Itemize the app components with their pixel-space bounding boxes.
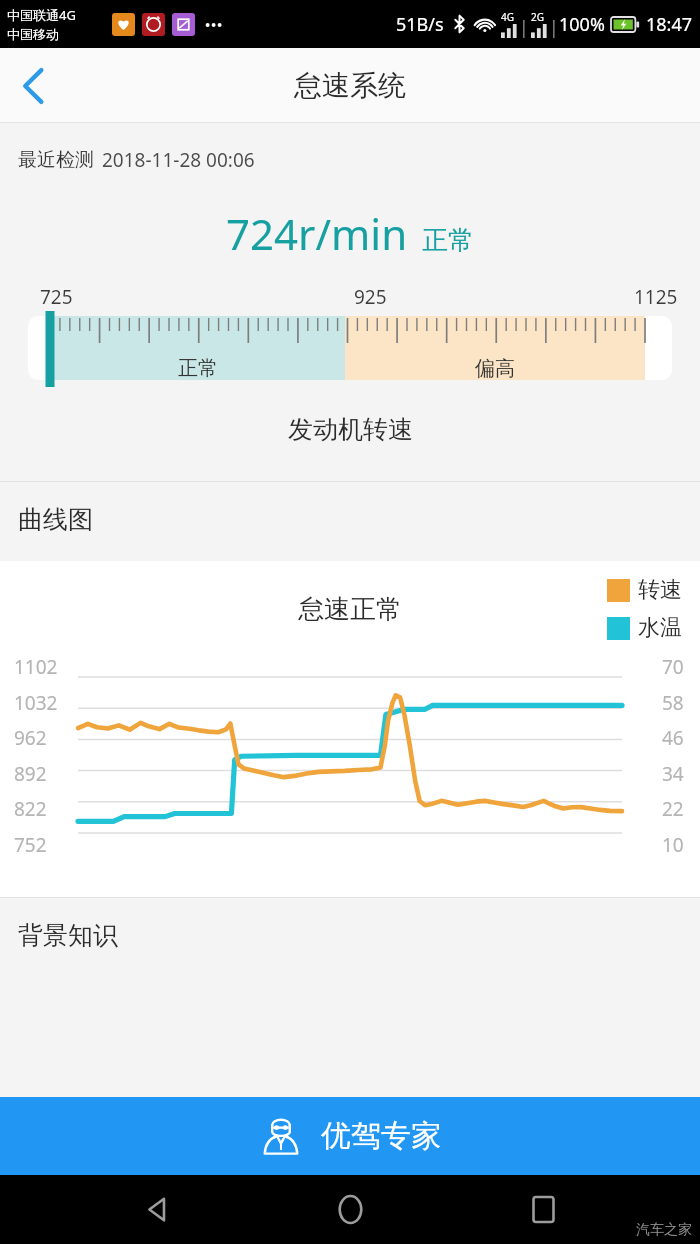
staticText: 背景知识 — [18, 920, 118, 951]
staticText: 10 — [662, 832, 684, 858]
button[interactable]: 最近任务 — [507, 1175, 579, 1244]
staticText: 转速 — [638, 576, 682, 604]
staticText: 中国联通4G — [7, 6, 76, 24]
staticText: 70 — [662, 654, 684, 680]
button[interactable]: 返回 — [121, 1175, 193, 1244]
staticText: 100% — [559, 12, 605, 37]
staticText: 962 — [14, 725, 47, 751]
staticText: 汽车之家 — [636, 1221, 692, 1239]
staticText: 2018-11-28 00:06 — [102, 147, 255, 173]
staticText: 最近检测 — [18, 148, 94, 172]
staticText: 水温 — [638, 614, 682, 642]
staticText: 725 — [40, 284, 73, 308]
button[interactable]: 优驾专家 — [0, 1097, 700, 1175]
staticText: 46 — [662, 725, 684, 751]
staticText: 58 — [662, 690, 684, 716]
staticText: 怠速正常 — [298, 593, 402, 626]
staticText: 18:47 — [646, 12, 693, 37]
staticText: 925 — [354, 284, 387, 308]
staticText: 51B/s — [396, 12, 444, 37]
staticText: 34 — [662, 761, 684, 787]
staticText: 偏高 — [475, 356, 515, 381]
staticText: 怠速系统 — [294, 68, 406, 103]
staticText: 724r/min — [226, 205, 408, 262]
button[interactable]: 主页 — [314, 1175, 386, 1244]
staticText: 优驾专家 — [321, 1117, 441, 1155]
staticText: 发动机转速 — [288, 414, 413, 445]
staticText: 1032 — [14, 690, 58, 716]
staticText: 4G — [501, 10, 514, 24]
staticText: 22 — [662, 796, 684, 822]
staticText: 822 — [14, 796, 47, 822]
staticText: 正常 — [422, 224, 474, 257]
staticText: 中国移动 — [7, 26, 59, 42]
staticText: 正常 — [178, 356, 218, 381]
staticText: 1125 — [634, 284, 678, 308]
staticText: 752 — [14, 832, 47, 858]
staticText: 2G — [531, 10, 544, 24]
staticText: 曲线图 — [18, 504, 93, 535]
button[interactable]: 返回 — [0, 53, 66, 119]
staticText: 892 — [14, 761, 47, 787]
staticText: 1102 — [14, 654, 58, 680]
